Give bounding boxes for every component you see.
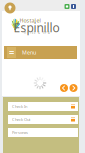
staticText: Check In <box>12 104 27 109</box>
staticText: Espinillo <box>13 19 59 35</box>
staticText: H O T E L & S P A <box>24 31 50 35</box>
button[interactable]: Next slide <box>68 83 78 93</box>
button[interactable]: Facebook <box>70 3 77 10</box>
button[interactable]: Check In <box>8 102 78 111</box>
button[interactable]: Check Out <box>8 115 78 124</box>
staticText: Check Out <box>12 117 30 122</box>
staticText: Personas <box>12 130 28 135</box>
button[interactable]: Open menu <box>7 47 16 58</box>
button[interactable]: Menu <box>21 47 37 58</box>
button[interactable]: Personas <box>8 128 78 137</box>
staticText: Menu <box>22 49 36 56</box>
button[interactable]: Previous slide <box>59 83 69 93</box>
staticText: Hostal el <box>19 17 40 24</box>
button[interactable]: Location <box>3 1 16 14</box>
button[interactable]: WhatsApp <box>63 3 70 10</box>
